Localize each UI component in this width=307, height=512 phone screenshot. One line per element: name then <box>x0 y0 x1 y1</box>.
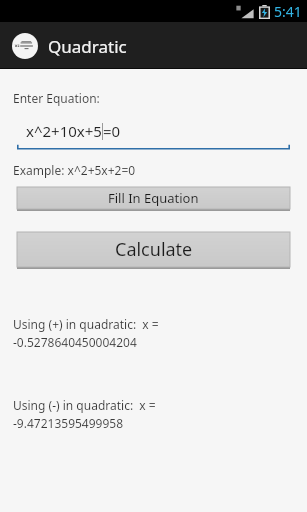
staticText: 5:41 <box>274 2 302 21</box>
staticText: Example: x^2+5x+2=0 <box>13 162 136 178</box>
staticText: -0.5278640450004204 <box>13 334 137 350</box>
staticText: -9.47213595499958 <box>13 415 124 431</box>
staticText: =0 <box>103 121 121 141</box>
staticText: Using (+) in quadratic: x = <box>13 316 159 332</box>
staticText: x^2+10x+5 <box>26 121 102 141</box>
staticText: Fill In Equation <box>108 189 199 207</box>
staticText: Calculate <box>115 237 193 262</box>
staticText: Using (-) in quadratic: x = <box>13 397 156 413</box>
staticText: Quadratic <box>48 35 127 58</box>
button[interactable]: Calculate <box>17 232 290 269</box>
button[interactable]: x^2+10x+5 <box>17 118 290 150</box>
staticText: Enter Equation: <box>13 90 100 106</box>
button[interactable]: Fill In Equation <box>17 187 290 211</box>
